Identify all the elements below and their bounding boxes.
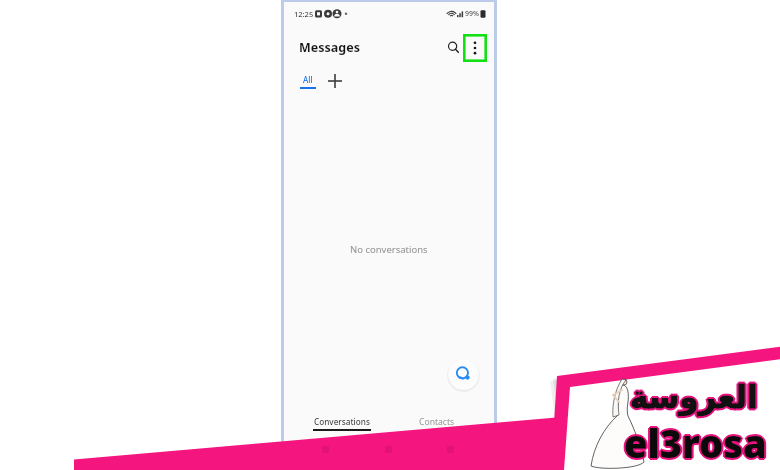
staticText: el3rosa bbox=[624, 415, 767, 467]
staticText: 12:25 bbox=[294, 9, 314, 19]
staticText: el3rosa bbox=[623, 418, 766, 470]
button[interactable]: Add category bbox=[323, 69, 346, 92]
staticText: All bbox=[303, 74, 313, 85]
staticText: العروسة bbox=[631, 378, 759, 414]
button[interactable]: More options bbox=[463, 34, 487, 62]
staticText: el3rosa bbox=[622, 417, 765, 469]
staticText: العروسة bbox=[629, 380, 757, 416]
staticText: el3rosa bbox=[626, 417, 769, 469]
staticText: العروسة bbox=[629, 378, 757, 414]
staticText: el3rosa bbox=[624, 417, 767, 469]
button[interactable]: Search bbox=[443, 37, 464, 58]
staticText: Messages bbox=[299, 39, 360, 56]
staticText: العروسة bbox=[632, 379, 760, 415]
staticText: el3rosa bbox=[624, 419, 767, 470]
staticText: العروسة bbox=[631, 380, 759, 416]
staticText: Conversations bbox=[314, 416, 370, 427]
button[interactable]: All bbox=[300, 74, 316, 87]
button[interactable]: New conversation bbox=[448, 359, 479, 390]
staticText: el3rosa bbox=[625, 416, 768, 468]
staticText: العروسة bbox=[630, 381, 758, 417]
staticText: Contacts bbox=[419, 416, 455, 428]
staticText: el3rosa bbox=[625, 418, 768, 470]
staticText: العروسة bbox=[630, 379, 758, 415]
button[interactable]: Contacts bbox=[384, 408, 489, 436]
staticText: العروسة bbox=[630, 377, 758, 413]
staticText: No conversations bbox=[350, 243, 428, 256]
staticText: el3rosa bbox=[623, 416, 766, 468]
staticText: 99% bbox=[465, 9, 479, 19]
staticText: العروسة bbox=[628, 379, 756, 415]
button[interactable]: Conversations bbox=[289, 408, 394, 436]
